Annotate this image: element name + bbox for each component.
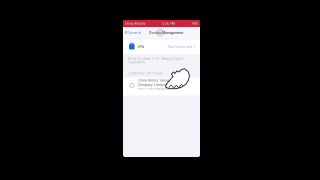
staticText: Company Limited — [138, 83, 166, 87]
staticText: VPN — [137, 44, 144, 49]
button[interactable]: General — [123, 27, 143, 38]
staticText: Allow this device to be managed by your … — [128, 57, 184, 64]
staticText: 3:26 PM — [162, 21, 175, 26]
button[interactable]: China Mobile Group — [123, 78, 200, 95]
staticText: China Mobile — [125, 21, 146, 26]
staticText: China Mobile Group — [138, 78, 169, 82]
button[interactable]: VPN — [123, 39, 200, 54]
staticText: Device Management — [149, 30, 183, 35]
staticText: General — [127, 30, 141, 35]
staticText: Not Connected — [168, 44, 192, 49]
staticText: 78% — [191, 21, 198, 26]
staticText: CONFIGURATION PROFILE — [128, 72, 163, 75]
staticText: Mobile Device Management — [138, 87, 171, 91]
